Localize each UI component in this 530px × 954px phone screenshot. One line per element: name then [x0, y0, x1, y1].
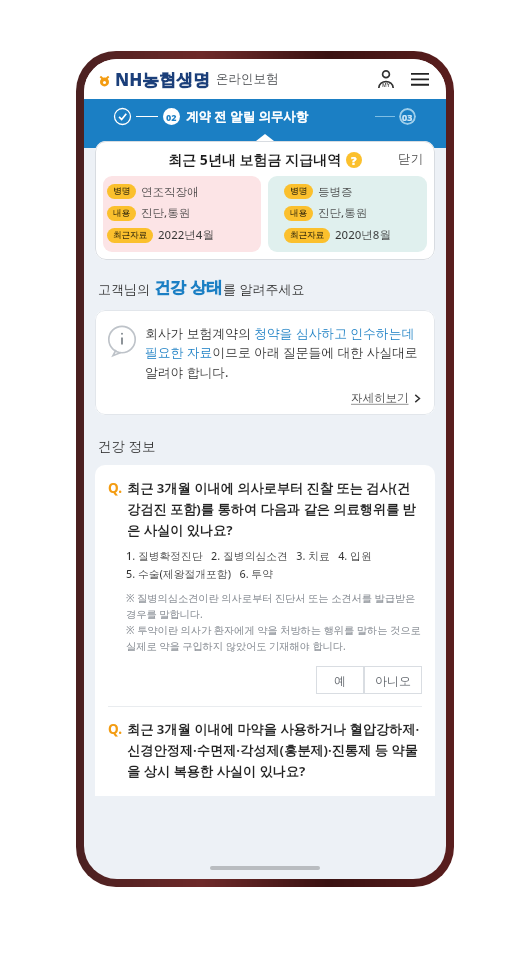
- staticText: 회사가 보험계약의 청약을 심사하고 인수하는데 필요한 자료이므로 아래 질문…: [145, 324, 422, 381]
- staticText: 병명: [290, 186, 307, 197]
- button[interactable]: 아니오: [364, 666, 422, 694]
- staticText: 닫기: [398, 151, 423, 167]
- staticText: 최근 3개월 이내에 마약을 사용하거나 혈압강하제·신경안정제·수면제·각성제…: [127, 720, 422, 780]
- button[interactable]: MY: [373, 66, 399, 92]
- button[interactable]: 도움말: [346, 152, 362, 168]
- staticText: 건강 정보: [98, 437, 156, 455]
- staticText: 연조직장애: [141, 185, 199, 199]
- staticText: 건강 상태: [154, 276, 223, 298]
- staticText: 02: [166, 111, 177, 123]
- staticText: 내용: [290, 208, 307, 219]
- button[interactable]: 메뉴: [407, 66, 433, 92]
- staticText: 병명: [113, 186, 130, 197]
- staticText: MY: [382, 82, 390, 89]
- staticText: 2022년4월: [158, 227, 214, 243]
- staticText: 내용: [113, 208, 130, 219]
- staticText: 를 알려주세요: [223, 280, 305, 298]
- staticText: 최근 3개월 이내에 의사로부터 진찰 또는 검사(건강검진 포함)를 통하여 …: [127, 479, 422, 539]
- staticText: 최근 5년내 보험금 지급내역: [168, 150, 341, 169]
- staticText: ※ 질병의심소견이란 의사로부터 진단서 또는 소견서를 발급받은 경우를 말합…: [126, 591, 422, 621]
- staticText: 진단,통원: [141, 205, 191, 221]
- button[interactable]: 자세히보기: [107, 391, 422, 405]
- button[interactable]: 닫기: [394, 149, 427, 169]
- staticText: 온라인보험: [216, 71, 279, 87]
- staticText: ?: [351, 153, 357, 168]
- staticText: 아니오: [375, 673, 411, 688]
- staticText: 최근자료: [113, 230, 147, 241]
- staticText: 계약 전 알릴 의무사항: [186, 108, 309, 125]
- staticText: 진단,통원: [318, 205, 368, 221]
- staticText: ※ 투약이란 의사가 환자에게 약을 처방하는 행위를 말하는 것으로 실제로 …: [126, 623, 422, 653]
- staticText: Q.: [108, 720, 122, 738]
- button[interactable]: 예: [316, 666, 364, 694]
- staticText: 등병증: [318, 185, 353, 199]
- staticText: Q.: [108, 479, 122, 497]
- staticText: 5. 수술(제왕절개포함) 6. 투약: [126, 566, 273, 581]
- staticText: 최근자료: [290, 230, 324, 241]
- staticText: 예: [334, 673, 346, 688]
- staticText: 03: [402, 111, 413, 123]
- staticText: NH농협생명: [115, 68, 211, 91]
- staticText: 자세히보기: [351, 391, 409, 405]
- staticText: 고객님의: [98, 280, 154, 298]
- staticText: 1. 질병확정진단 2. 질병의심소견 3. 치료 4. 입원: [126, 548, 372, 563]
- staticText: 2020년8월: [335, 227, 391, 243]
